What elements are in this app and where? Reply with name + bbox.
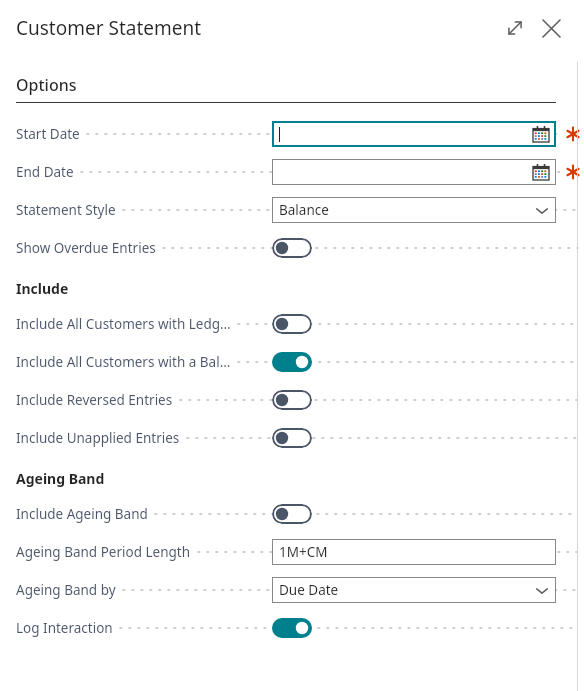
staticText: Ageing Band by (16, 581, 116, 599)
staticText: Due Date (279, 581, 535, 599)
staticText: Options (16, 74, 77, 96)
staticText: Log Interaction (16, 619, 113, 637)
staticText: Customer Statement (16, 15, 202, 41)
staticText: Start Date (16, 125, 80, 143)
button[interactable]: Log Interaction (272, 618, 312, 638)
staticText: Include Ageing Band (16, 505, 148, 523)
button[interactable]: Include Reversed Entries (272, 390, 312, 410)
staticText: 1M+CM (279, 543, 549, 561)
button[interactable]: Include Unapplied Entries (272, 428, 312, 448)
button[interactable]: Pick start date (533, 126, 549, 142)
button[interactable]: End Date (279, 159, 549, 185)
button[interactable]: Include Ageing Band (272, 504, 312, 524)
button[interactable]: Include All Customers with Ledger Entrie… (272, 314, 312, 334)
button[interactable]: Show Overdue Entries (272, 238, 312, 258)
staticText: End Date (16, 163, 74, 181)
staticText: Include All Customers with a Bal… (16, 353, 231, 371)
button[interactable]: Include All Customers with a Balance (272, 352, 312, 372)
staticText: Include All Customers with Ledg… (16, 315, 231, 333)
staticText: Ageing Band Period Length (16, 543, 191, 561)
button[interactable]: Close (536, 13, 566, 43)
button[interactable]: Ageing Band by (279, 577, 549, 603)
staticText (283, 125, 533, 143)
staticText: Include (16, 279, 69, 298)
button[interactable]: Statement Style (279, 197, 549, 223)
button[interactable]: Pick end date (533, 164, 549, 180)
staticText: Show Overdue Entries (16, 239, 156, 257)
staticText: Statement Style (16, 201, 116, 219)
button[interactable]: Start Date (279, 121, 549, 147)
staticText: Ageing Band (16, 469, 105, 488)
staticText (279, 163, 533, 181)
staticText: Include Reversed Entries (16, 391, 173, 409)
button[interactable]: Expand (500, 13, 530, 43)
staticText: Include Unapplied Entries (16, 429, 180, 447)
button[interactable]: Ageing Band Period Length (279, 539, 549, 565)
staticText: Balance (279, 201, 535, 219)
